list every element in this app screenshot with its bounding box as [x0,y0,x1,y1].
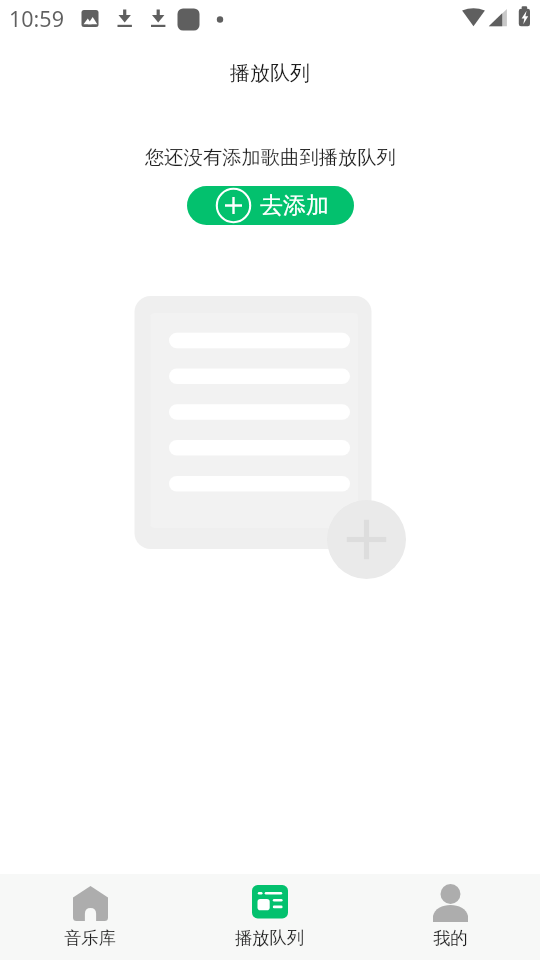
staticText: 您还没有添加歌曲到播放队列 [145,145,396,169]
staticText: 我的 [433,927,468,949]
staticText: 10:59 [9,4,64,33]
button[interactable]: 播放队列 [180,874,360,960]
staticText: 播放队列 [230,61,310,86]
button[interactable]: 去添加 [187,186,354,225]
button[interactable]: 添加歌曲 [327,500,406,579]
button[interactable]: 我的 [360,874,540,960]
staticText: 播放队列 [235,927,305,949]
staticText: 去添加 [260,191,329,220]
staticText: 音乐库 [64,927,116,949]
button[interactable]: 音乐库 [0,874,180,960]
